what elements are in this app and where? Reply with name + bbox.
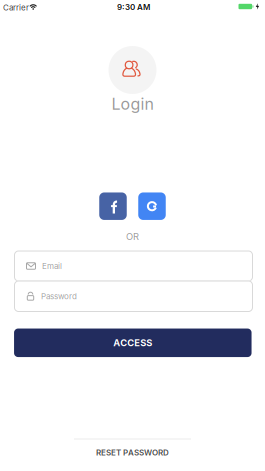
staticText: RESET PASSWORD (96, 448, 169, 457)
staticText: OR (126, 231, 139, 242)
staticText: 9:30 AM (117, 2, 150, 12)
button[interactable]: Log in with Google (138, 192, 166, 220)
staticText: ACCESS (113, 337, 152, 348)
staticText: Password (41, 291, 77, 301)
staticText: Carrier (3, 3, 29, 12)
staticText: Email (42, 261, 62, 271)
button[interactable]: Log in with Facebook (99, 192, 127, 220)
button[interactable]: RESET PASSWORD (57, 445, 207, 459)
button[interactable]: ACCESS (14, 329, 252, 357)
staticText: Login (111, 95, 153, 113)
